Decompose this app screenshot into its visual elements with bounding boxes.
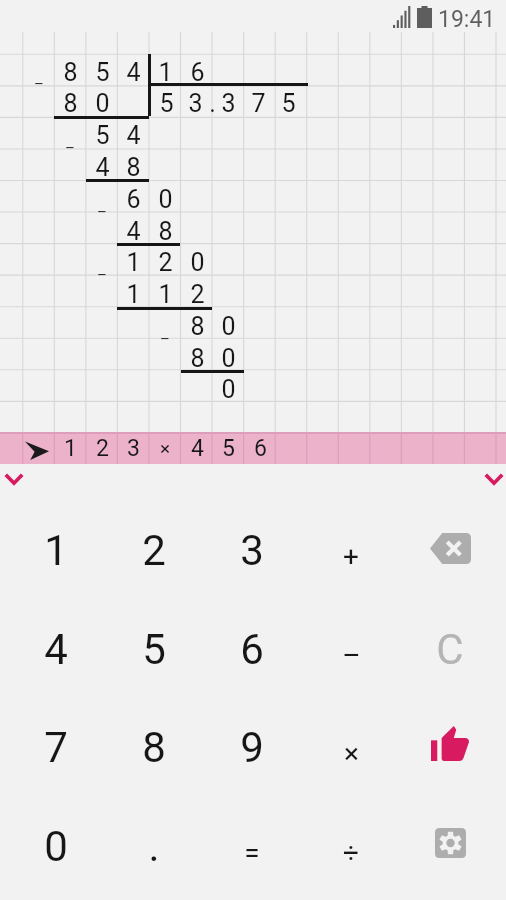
button[interactable]: 6 <box>203 600 301 698</box>
button[interactable]: C <box>401 600 499 698</box>
staticText: 1 <box>64 435 77 462</box>
button[interactable]: 2 <box>105 501 203 599</box>
staticText: 4 <box>126 121 141 150</box>
button[interactable]: ÷ <box>302 803 400 900</box>
staticText: 8 <box>190 344 205 373</box>
staticText: 8 <box>63 89 78 118</box>
staticText: 2 <box>190 280 205 309</box>
staticText: 6 <box>126 185 141 214</box>
button[interactable]: Next result <box>478 466 506 492</box>
staticText: = <box>244 836 260 869</box>
staticText: 2 <box>158 248 173 277</box>
staticText: 5 <box>95 121 110 150</box>
button[interactable]: Done <box>401 698 499 796</box>
staticText: 4 <box>126 58 141 87</box>
staticText: 8 <box>190 312 205 341</box>
staticText: . <box>209 89 216 118</box>
staticText: 2 <box>142 526 166 575</box>
staticText: C <box>436 625 464 674</box>
staticText: 19:41 <box>438 6 496 33</box>
staticText: 6 <box>240 625 264 674</box>
staticText: 8 <box>142 723 166 772</box>
staticText: 4 <box>126 217 141 246</box>
staticText: 9 <box>240 723 264 772</box>
staticText: – <box>65 139 75 157</box>
button[interactable]: + <box>302 507 400 605</box>
button[interactable]: Settings <box>401 797 499 895</box>
staticText: ÷ <box>343 836 359 869</box>
button[interactable]: . <box>105 797 203 895</box>
staticText: 3 <box>240 526 264 575</box>
button[interactable]: Backspace <box>401 501 499 599</box>
staticText: 6 <box>254 435 267 462</box>
button[interactable]: 0 <box>7 797 105 895</box>
staticText: 1 <box>158 280 173 309</box>
staticText: 1 <box>126 248 141 277</box>
staticText: 2 <box>96 435 109 462</box>
staticText: – <box>342 639 361 672</box>
staticText: 1 <box>158 58 173 87</box>
staticText: 1 <box>126 280 141 309</box>
button[interactable]: 8 <box>105 698 203 796</box>
staticText: . <box>148 822 160 871</box>
button[interactable]: 4 <box>7 600 105 698</box>
staticText: 4 <box>95 153 110 182</box>
button[interactable]: 9 <box>203 698 301 796</box>
button[interactable]: 1 <box>7 501 105 599</box>
staticText: 5 <box>222 435 235 462</box>
staticText: – <box>97 203 107 221</box>
staticText: 8 <box>158 217 173 246</box>
staticText: 1 <box>44 526 68 575</box>
staticText: 8 <box>63 58 78 87</box>
staticText: × <box>344 737 359 770</box>
button[interactable]: 5 <box>105 600 203 698</box>
staticText: 0 <box>221 375 236 404</box>
staticText: 0 <box>95 89 110 118</box>
staticText: 3 <box>127 435 140 462</box>
staticText: 0 <box>158 185 173 214</box>
staticText: – <box>97 266 107 284</box>
staticText: × <box>160 437 171 459</box>
staticText: 0 <box>44 822 68 871</box>
button[interactable]: – <box>302 606 400 704</box>
button[interactable]: = <box>203 803 301 900</box>
staticText: 0 <box>221 344 236 373</box>
button[interactable]: 3 <box>203 501 301 599</box>
staticText: 4 <box>191 435 204 462</box>
button[interactable]: 1 <box>0 432 506 464</box>
staticText: 5 <box>281 89 296 118</box>
staticText: 3 <box>188 89 203 118</box>
button[interactable]: × <box>302 704 400 802</box>
staticText: 0 <box>190 248 205 277</box>
staticText: 8 <box>126 153 141 182</box>
staticText: – <box>34 75 44 93</box>
staticText: 4 <box>44 625 68 674</box>
staticText: – <box>160 330 170 348</box>
staticText: + <box>343 540 359 573</box>
staticText: 6 <box>190 58 205 87</box>
staticText: 5 <box>142 625 166 674</box>
staticText: 5 <box>159 89 174 118</box>
staticText: 0 <box>221 312 236 341</box>
staticText: 3 <box>221 89 236 118</box>
staticText: 7 <box>251 89 266 118</box>
button[interactable]: 7 <box>7 698 105 796</box>
button[interactable]: Previous result <box>0 466 28 492</box>
staticText: 5 <box>95 58 110 87</box>
staticText: 7 <box>44 723 68 772</box>
